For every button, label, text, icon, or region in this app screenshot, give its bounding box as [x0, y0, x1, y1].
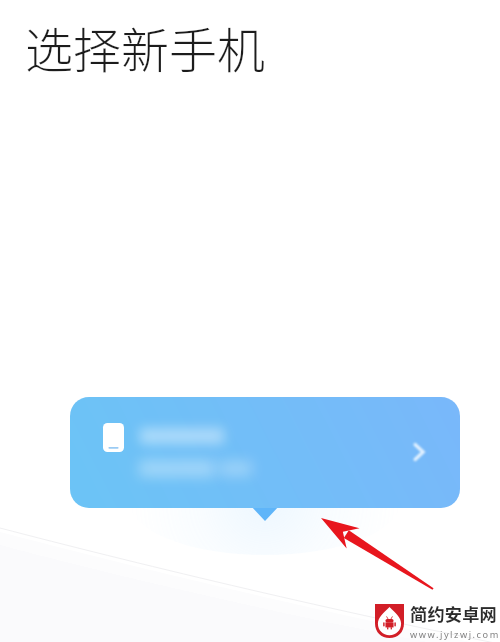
button[interactable]: Open device details: [400, 430, 438, 474]
staticText: 简约安卓网: [410, 601, 497, 626]
button[interactable]: Open device details: [70, 397, 460, 508]
staticText: 选择新手机: [25, 12, 266, 82]
staticText: www.jylzwj.com: [410, 628, 500, 641]
